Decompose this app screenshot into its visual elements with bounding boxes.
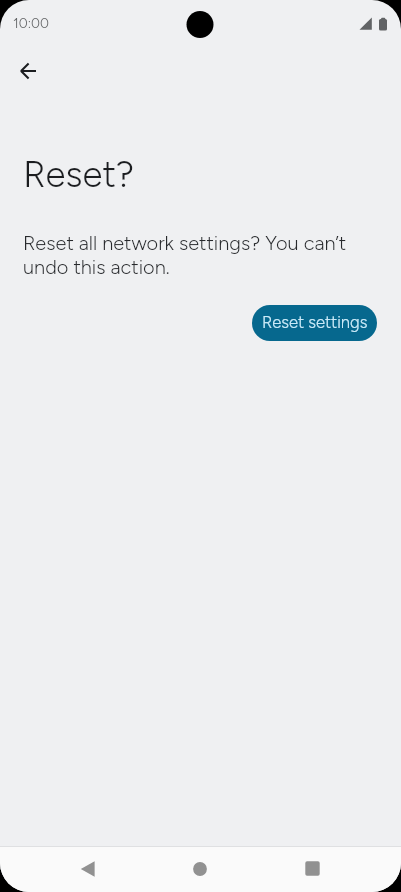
button[interactable]: Recent apps xyxy=(288,846,336,891)
button[interactable]: Reset settings xyxy=(252,305,377,341)
staticText: Reset? xyxy=(23,154,135,196)
staticText: 10:00 xyxy=(13,15,49,32)
button[interactable]: Back xyxy=(64,846,112,891)
staticText: Reset settings xyxy=(262,312,368,332)
button[interactable]: Back xyxy=(8,49,52,93)
staticText: Reset all network settings? You can’t un… xyxy=(23,231,373,279)
button[interactable]: Home xyxy=(176,846,224,891)
